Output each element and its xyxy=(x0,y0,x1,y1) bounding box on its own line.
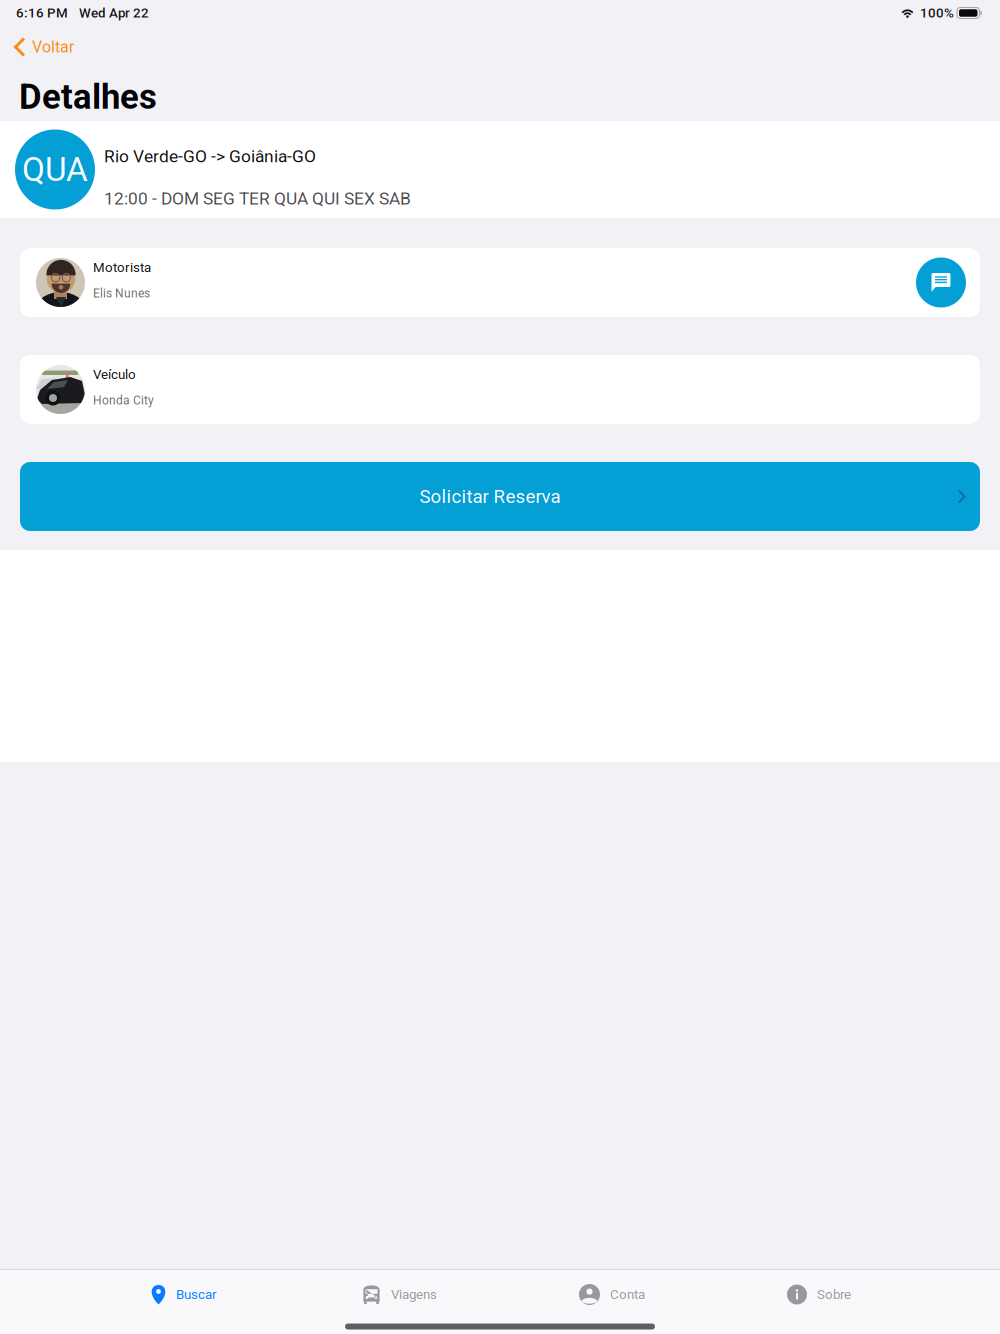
staticText: Solicitar Reserva xyxy=(419,486,560,507)
button[interactable]: Voltar xyxy=(0,26,87,68)
staticText: Conta xyxy=(610,1287,645,1302)
button[interactable]: Sobre xyxy=(787,1270,851,1319)
staticText: Viagens xyxy=(391,1287,437,1302)
staticText: Detalhes xyxy=(19,77,157,117)
button[interactable]: Viagens xyxy=(363,1270,437,1319)
button[interactable]: Conta xyxy=(579,1270,645,1319)
staticText: 100% xyxy=(920,5,954,21)
staticText: Buscar xyxy=(176,1287,217,1302)
staticText: QUA xyxy=(22,150,88,189)
staticText: Elis Nunes xyxy=(93,286,150,300)
staticText: 6:16 PM xyxy=(16,5,68,21)
staticText: Sobre xyxy=(817,1287,851,1302)
staticText: 12:00 - DOM SEG TER QUA QUI SEX SAB xyxy=(104,188,411,209)
staticText: Voltar xyxy=(32,38,74,56)
staticText: Veículo xyxy=(93,367,136,382)
button[interactable]: Motorista xyxy=(20,248,980,317)
button[interactable]: Conversar com o motorista xyxy=(916,257,966,307)
button[interactable]: Buscar xyxy=(151,1270,217,1319)
button[interactable]: Veículo xyxy=(20,355,980,424)
button[interactable]: Solicitar Reserva xyxy=(20,462,980,531)
staticText: Rio Verde-GO -> Goiânia-GO xyxy=(104,146,316,166)
staticText: Wed Apr 22 xyxy=(79,5,149,21)
staticText: Motorista xyxy=(93,260,151,275)
staticText: Honda City xyxy=(93,393,154,407)
